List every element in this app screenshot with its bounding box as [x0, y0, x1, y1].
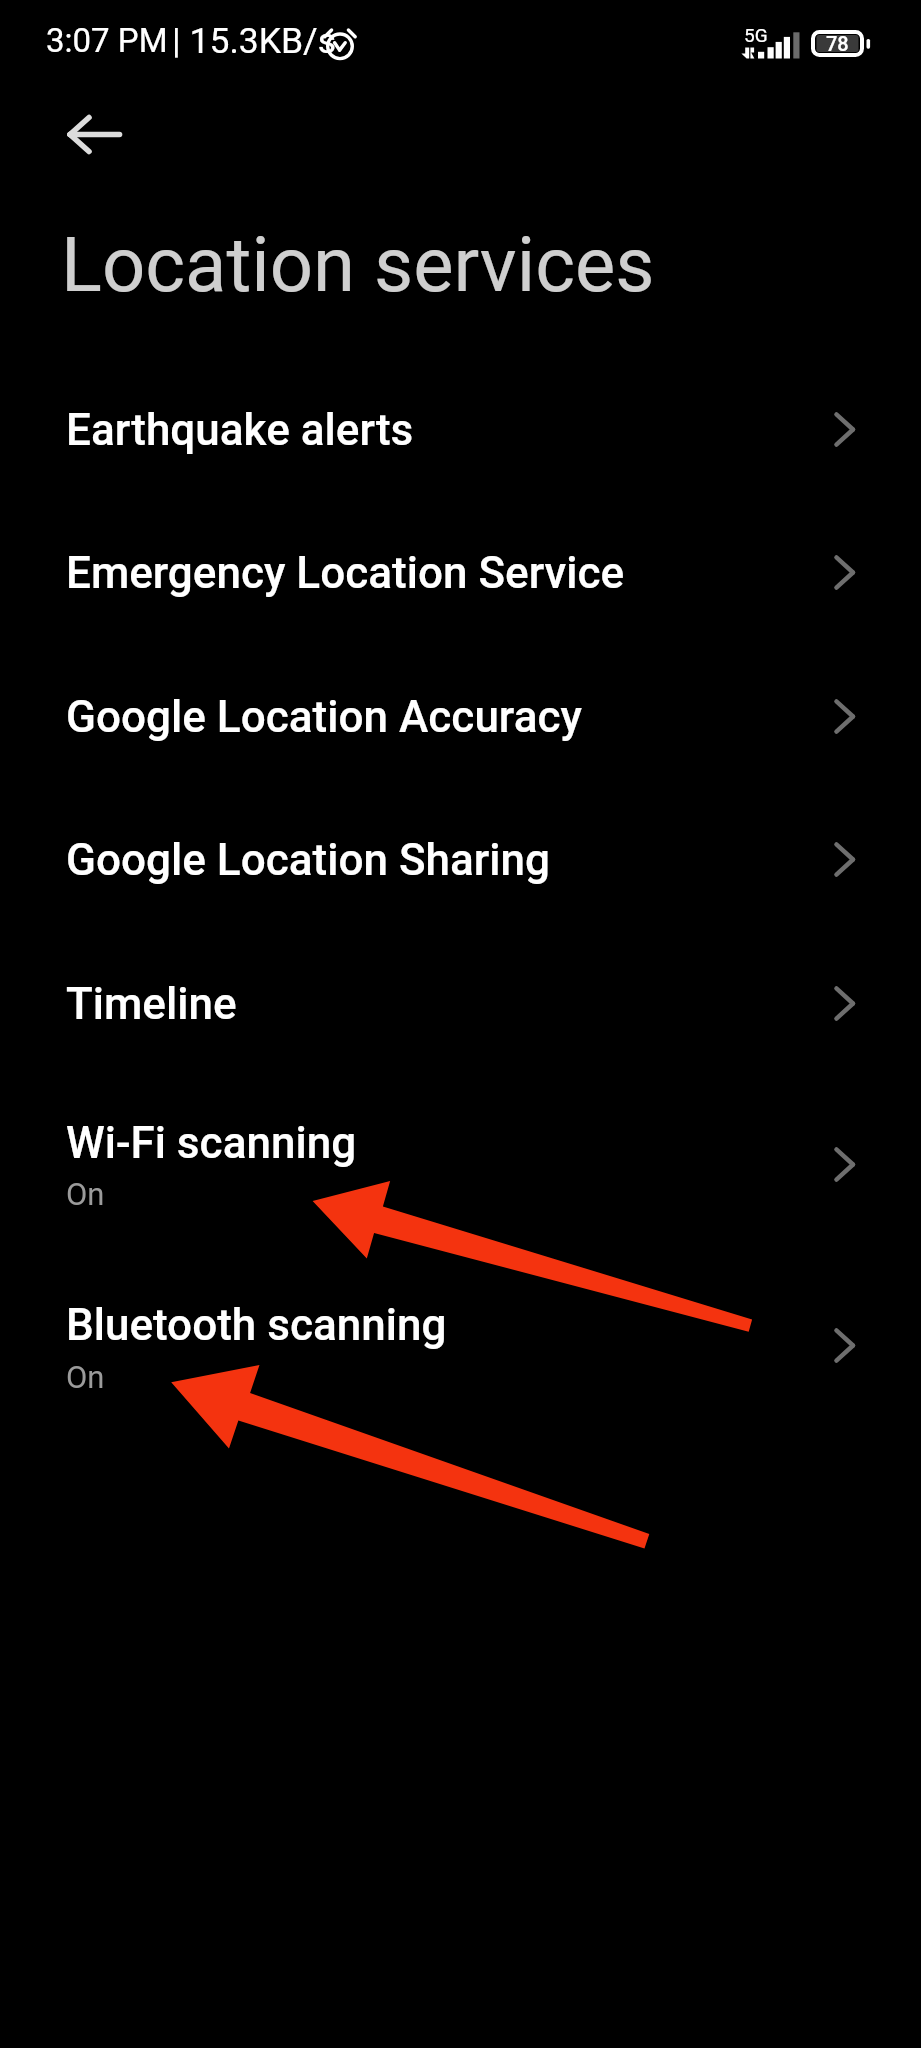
staticText: | 15.3KB/s	[172, 20, 337, 62]
staticText: On	[66, 1176, 105, 1212]
button[interactable]: Emergency Location Service	[0, 500, 921, 644]
staticText: Location services	[61, 220, 655, 309]
staticText: Wi-Fi scanning	[66, 1117, 357, 1169]
staticText: Timeline	[66, 978, 237, 1030]
staticText: 5G	[744, 24, 768, 46]
staticText: Emergency Location Service	[66, 547, 625, 599]
button[interactable]: Wi-Fi scanning	[0, 1068, 921, 1250]
staticText: On	[66, 1359, 105, 1395]
button[interactable]: Earthquake alerts	[0, 357, 921, 501]
staticText: Google Location Accuracy	[66, 691, 582, 743]
staticText: Earthquake alerts	[66, 404, 414, 456]
staticText: Google Location Sharing	[66, 834, 550, 886]
button[interactable]: Bluetooth scanning	[0, 1250, 921, 1432]
staticText: Bluetooth scanning	[66, 1299, 447, 1351]
button[interactable]: Back	[50, 98, 138, 172]
button[interactable]: Google Location Accuracy	[0, 644, 921, 788]
button[interactable]: Google Location Sharing	[0, 787, 921, 931]
staticText: 3:07 PM	[46, 21, 168, 60]
button[interactable]: Timeline	[0, 931, 921, 1075]
staticText: 78	[826, 32, 849, 55]
